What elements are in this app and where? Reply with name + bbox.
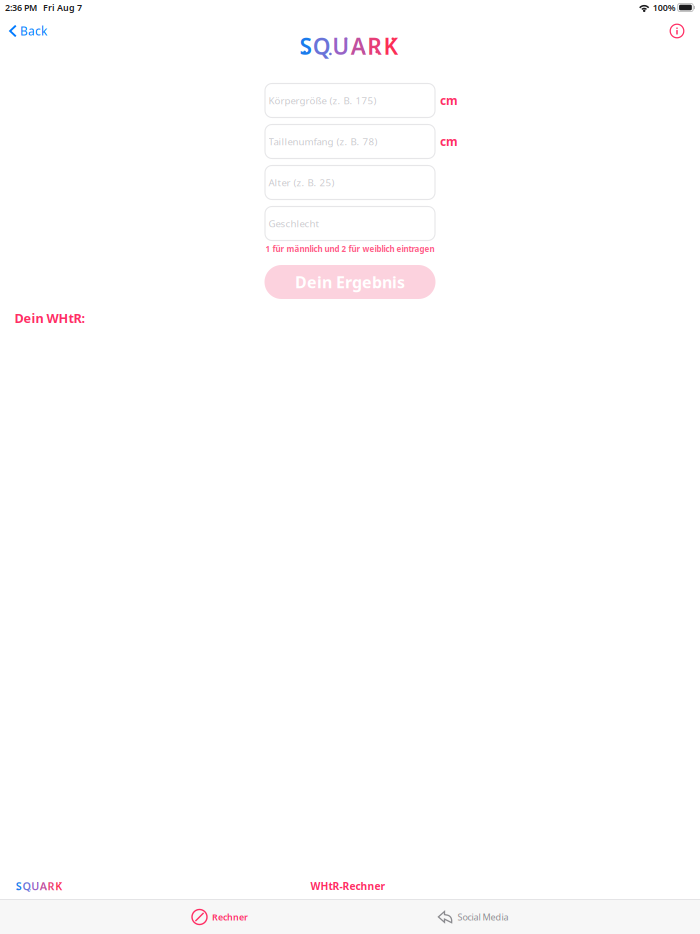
button[interactable]: Info [661,15,693,47]
staticText: cm [440,133,458,150]
button[interactable]: Back [1,16,55,46]
staticText: Alter (z. B. 25) [268,176,334,189]
staticText: Taillenumfang (z. B. 78) [268,135,377,148]
staticText: Dein WHtR: [14,309,85,327]
staticText: Geschlecht [268,217,319,230]
staticText: A [351,31,366,61]
staticText: WHtR-Rechner [310,879,385,893]
staticText: Rechner [212,911,248,923]
staticText: S [299,31,311,61]
staticText: 1 für männlich und 2 für weiblich eintra… [265,244,434,254]
staticText: Fri Aug 7 [37,1,82,14]
staticText: Q [313,31,331,61]
button[interactable]: Social Media [431,900,514,934]
button[interactable]: Rechner [186,900,254,934]
staticText: A [40,879,47,893]
staticText: R [367,31,382,61]
staticText: U [332,31,349,61]
staticText: Social Media [457,911,508,923]
staticText: U [31,879,39,893]
staticText: S [16,879,22,893]
staticText: K [384,31,399,61]
button[interactable]: Dein Ergebnis [264,265,435,299]
staticText: Q [22,879,30,893]
staticText: Dein Ergebnis [295,271,405,293]
staticText: 100% [651,1,678,14]
staticText: cm [440,92,458,109]
staticText: Back [20,23,47,39]
staticText: K [55,879,62,893]
staticText: 2:36 PM [5,1,37,14]
staticText: Körpergröße (z. B. 175) [268,94,376,107]
staticText: R [47,879,54,893]
